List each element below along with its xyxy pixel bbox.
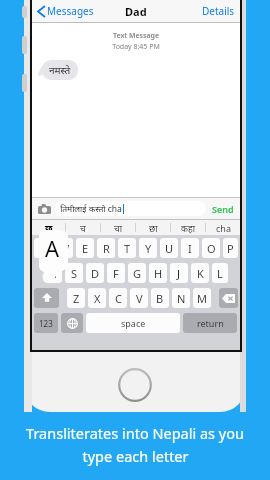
- button[interactable]: L: [212, 263, 228, 283]
- button[interactable]: G: [128, 263, 146, 283]
- staticText: Z: [73, 291, 80, 306]
- button[interactable]: W: [55, 238, 73, 258]
- staticText: O: [207, 241, 216, 256]
- button[interactable]: A: [44, 263, 62, 283]
- button[interactable]: F: [107, 263, 125, 283]
- button[interactable]: कहा: [171, 220, 205, 235]
- staticText: तिमीलाई कस्तो cha: [60, 203, 122, 215]
- staticText: I: [188, 241, 192, 256]
- staticText: Q: [39, 241, 48, 256]
- button[interactable]: M: [193, 288, 211, 308]
- button[interactable]: space: [86, 313, 180, 333]
- button[interactable]: X: [88, 288, 106, 308]
- button[interactable]: return: [183, 313, 237, 333]
- button[interactable]: K: [191, 263, 209, 283]
- button[interactable]: छा: [136, 220, 170, 235]
- staticText: चा: [114, 222, 123, 234]
- button[interactable]: Backspace: [219, 288, 238, 308]
- staticText: S: [71, 266, 78, 281]
- staticText: T: [124, 241, 131, 256]
- button[interactable]: तिमीलाई कस्तो cha: [55, 201, 206, 216]
- staticText: type each letter: [82, 446, 189, 466]
- button[interactable]: C: [109, 288, 127, 308]
- staticText: M: [197, 291, 207, 306]
- staticText: return: [197, 317, 224, 329]
- staticText: W: [59, 241, 70, 256]
- staticText: J: [177, 266, 181, 281]
- button[interactable]: Change keyboard: [61, 313, 83, 333]
- staticText: A: [49, 266, 57, 281]
- staticText: N: [177, 291, 186, 306]
- staticText: V: [136, 291, 143, 306]
- button[interactable]: Z: [67, 288, 85, 308]
- button[interactable]: V: [130, 288, 148, 308]
- button[interactable]: Shift: [34, 288, 59, 308]
- button[interactable]: O: [202, 238, 220, 258]
- staticText: R: [103, 241, 110, 256]
- button[interactable]: छ: [32, 220, 65, 235]
- button[interactable]: Q: [34, 238, 52, 258]
- button[interactable]: P: [223, 238, 238, 258]
- button[interactable]: D: [86, 263, 104, 283]
- staticText: space: [121, 317, 146, 329]
- staticText: नमस्ते: [49, 63, 71, 77]
- button[interactable]: Details: [197, 1, 240, 21]
- button[interactable]: N: [172, 288, 190, 308]
- button[interactable]: नमस्ते: [38, 60, 74, 80]
- staticText: G: [133, 266, 142, 281]
- staticText: K: [197, 266, 204, 281]
- staticText: Text Message: [32, 31, 240, 41]
- staticText: Today 8:45 PM: [32, 42, 240, 52]
- button[interactable]: Y: [139, 238, 157, 258]
- staticText: F: [113, 266, 119, 281]
- staticText: D: [91, 266, 100, 281]
- button[interactable]: 123: [34, 313, 58, 333]
- button[interactable]: cha: [206, 220, 240, 235]
- button[interactable]: Messages: [36, 2, 96, 20]
- staticText: छा: [149, 222, 158, 234]
- staticText: H: [154, 266, 163, 281]
- staticText: U: [165, 241, 174, 256]
- button[interactable]: Camera: [36, 201, 52, 217]
- button[interactable]: H: [149, 263, 167, 283]
- staticText: P: [227, 241, 234, 256]
- button[interactable]: I: [181, 238, 199, 258]
- staticText: L: [217, 266, 223, 281]
- staticText: छ: [45, 221, 53, 235]
- button[interactable]: च: [66, 220, 100, 235]
- button[interactable]: T: [118, 238, 136, 258]
- button[interactable]: S: [65, 263, 83, 283]
- staticText: Transliterates into Nepali as you: [26, 423, 244, 443]
- staticText: Messages: [47, 4, 94, 18]
- staticText: A: [45, 233, 60, 263]
- button[interactable]: E: [76, 238, 94, 258]
- button[interactable]: J: [170, 263, 188, 283]
- button[interactable]: U: [160, 238, 178, 258]
- staticText: च: [80, 222, 86, 234]
- button[interactable]: चा: [101, 220, 135, 235]
- staticText: कहा: [181, 222, 196, 234]
- button[interactable]: B: [151, 288, 169, 308]
- button[interactable]: R: [97, 238, 115, 258]
- staticText: cha: [216, 222, 231, 234]
- staticText: E: [82, 241, 89, 256]
- staticText: C: [115, 291, 122, 306]
- staticText: 123: [39, 318, 53, 329]
- staticText: Y: [145, 241, 152, 256]
- staticText: Dad: [125, 4, 147, 19]
- staticText: X: [94, 291, 101, 306]
- button[interactable]: Send: [210, 201, 236, 217]
- staticText: B: [156, 291, 164, 306]
